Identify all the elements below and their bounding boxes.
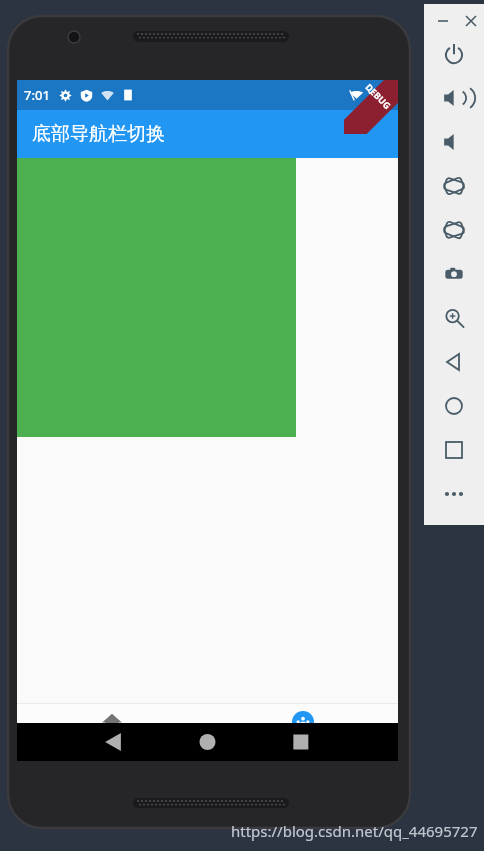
staticText: 首页 xyxy=(100,737,124,752)
staticText: DEBUG xyxy=(363,81,394,111)
staticText: 底部导航栏切换 xyxy=(32,122,165,146)
button[interactable]: 用户 xyxy=(207,704,398,761)
staticText: 7:01 xyxy=(24,86,50,104)
staticText: 用户 xyxy=(291,737,315,752)
button[interactable]: 首页 xyxy=(17,704,207,761)
staticText: https://blog.csdn.net/qq_44695727 xyxy=(231,821,478,841)
